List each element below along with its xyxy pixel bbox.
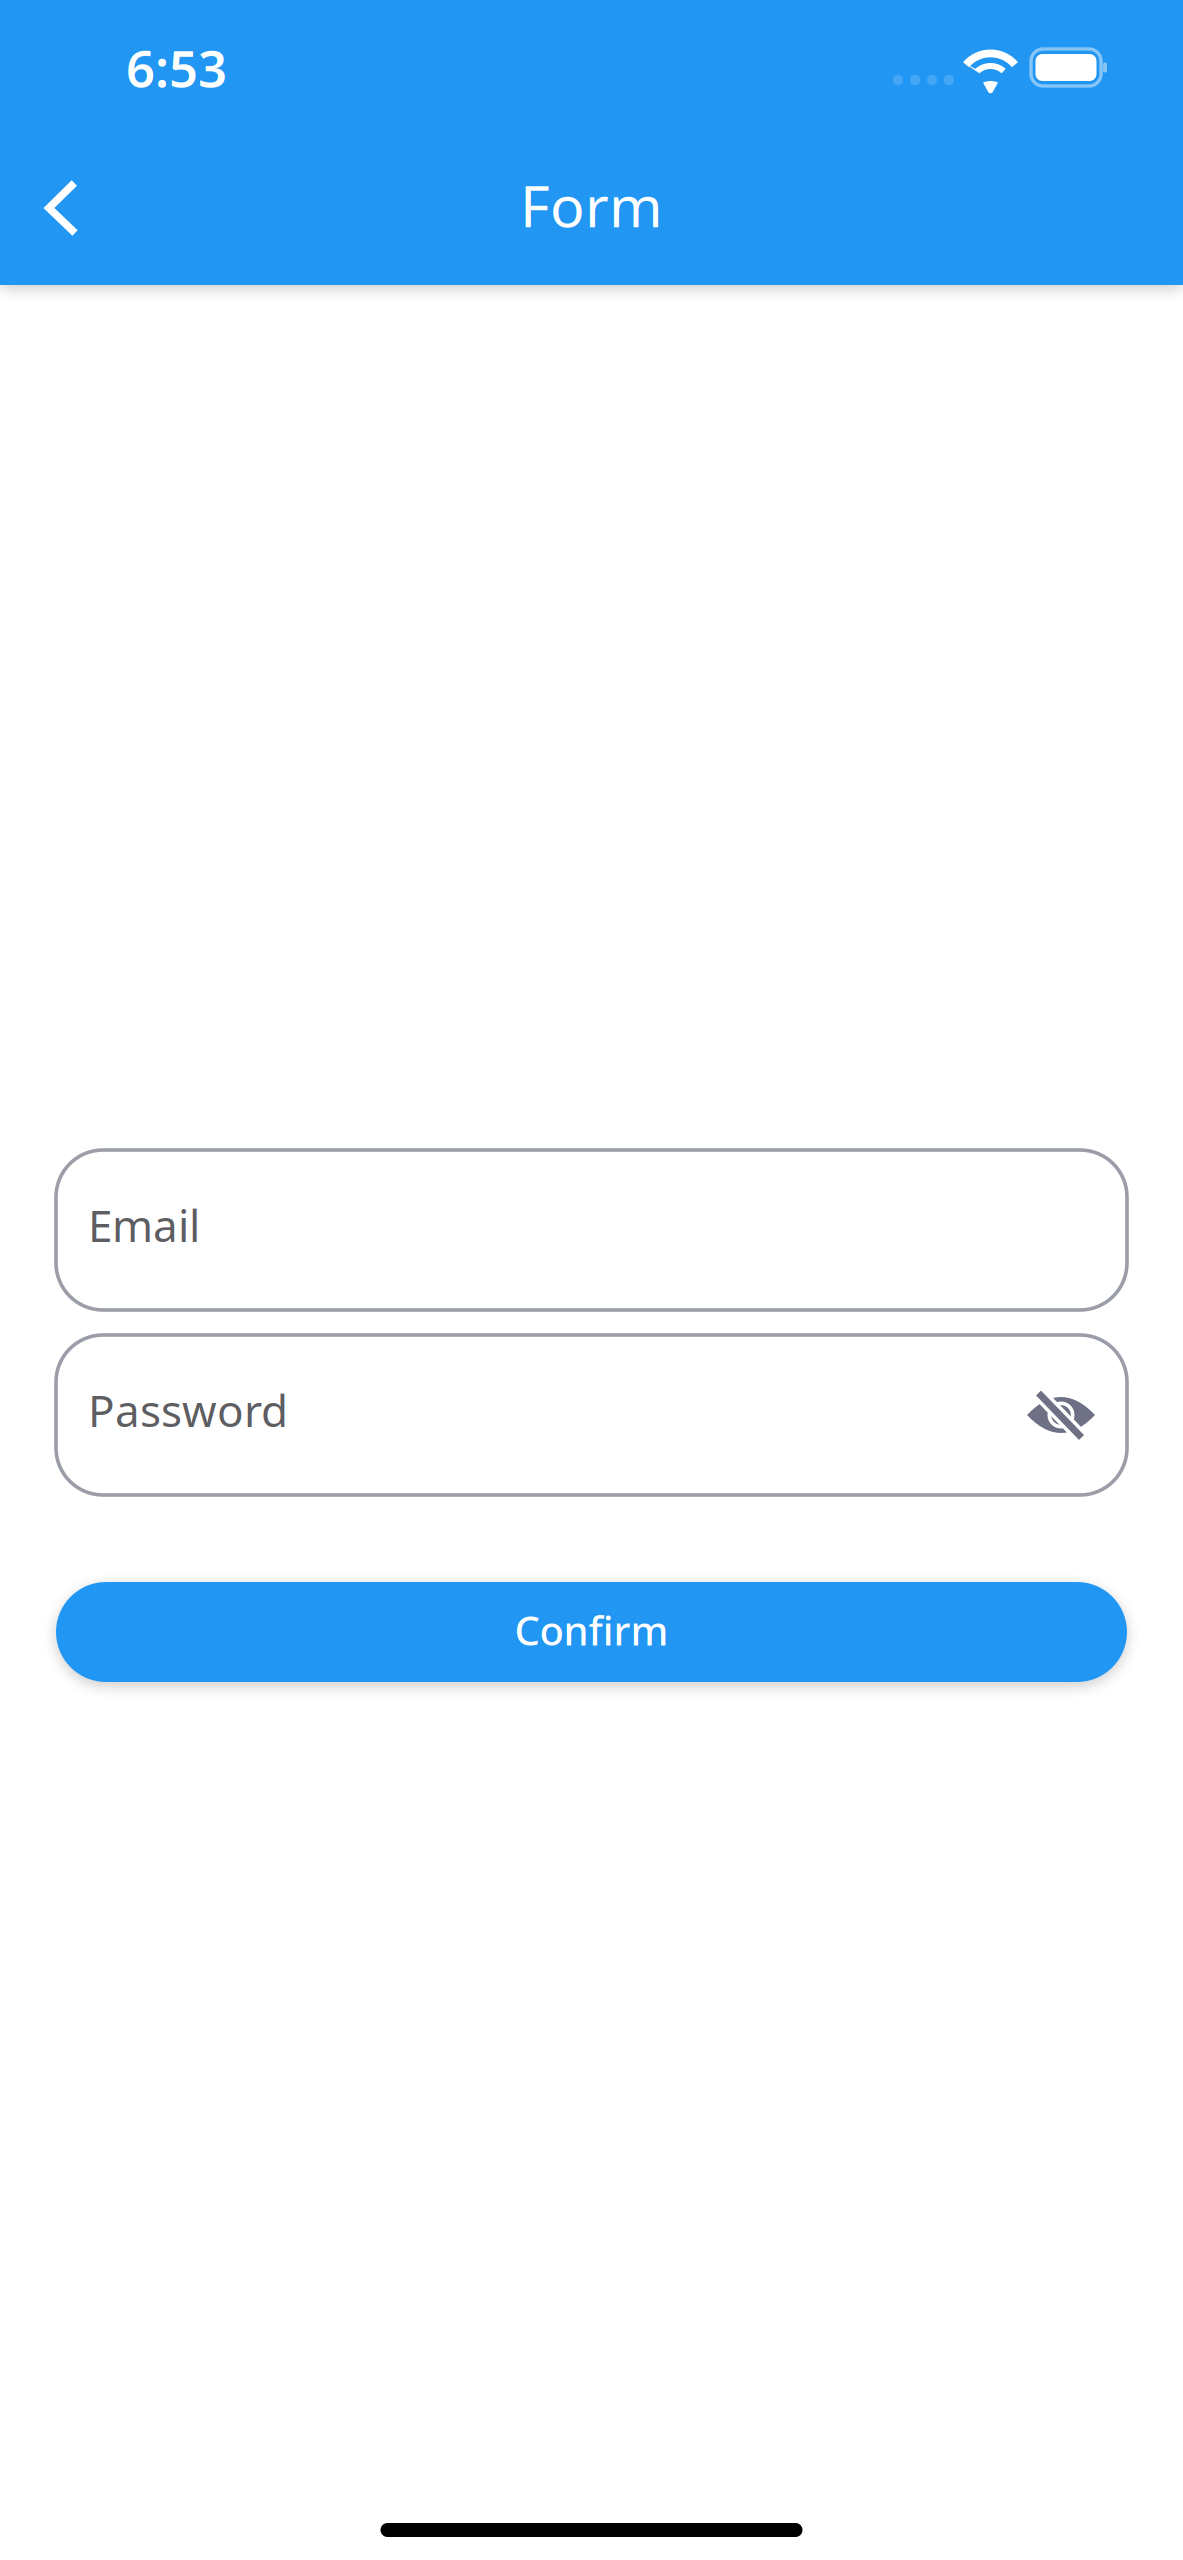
staticText: Form	[520, 167, 663, 243]
staticText: 6:53	[126, 34, 227, 101]
button[interactable]: Confirm	[56, 1582, 1127, 1682]
staticText: Confirm	[514, 1603, 668, 1656]
staticText: Email	[88, 1196, 200, 1254]
button[interactable]: Show password	[1027, 1388, 1095, 1441]
staticText: Password	[88, 1381, 288, 1439]
button[interactable]: Back	[0, 155, 121, 261]
